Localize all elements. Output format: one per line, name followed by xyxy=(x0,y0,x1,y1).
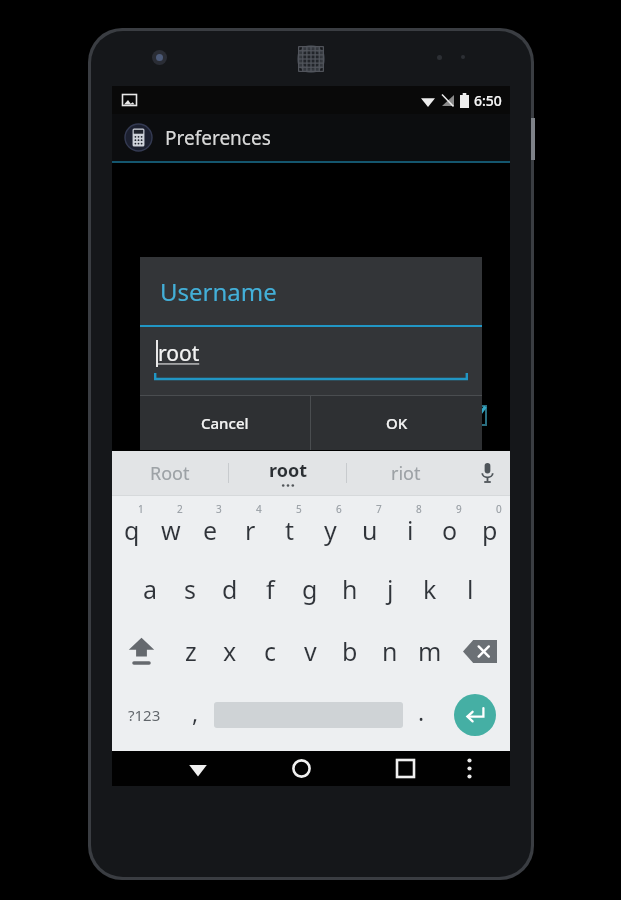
other: Login enabled xyxy=(464,403,488,427)
staticText: t xyxy=(285,513,295,547)
button[interactable]: c xyxy=(250,620,290,682)
button[interactable]: f xyxy=(250,558,290,620)
button[interactable]: . xyxy=(403,682,440,748)
staticText: v xyxy=(304,634,317,668)
staticText: b xyxy=(342,634,358,668)
staticText: 4 xyxy=(256,502,262,516)
staticText: ?123 xyxy=(128,705,161,725)
staticText: y xyxy=(324,513,337,547)
staticText: OK xyxy=(386,413,408,433)
staticText: 6:50 xyxy=(474,91,502,110)
staticText: 8 xyxy=(416,502,422,516)
button[interactable]: 0 xyxy=(470,496,510,558)
button[interactable]: root xyxy=(229,451,346,495)
staticText: q xyxy=(124,513,140,547)
staticText: s xyxy=(184,572,196,606)
button[interactable]: 2 xyxy=(151,496,190,558)
button[interactable]: 3 xyxy=(190,496,230,558)
button[interactable]: Cancel xyxy=(140,396,310,450)
staticText: 6 xyxy=(336,502,342,516)
staticText: 1 xyxy=(138,502,144,516)
staticText: d xyxy=(222,572,238,606)
button[interactable]: ?123 xyxy=(112,682,177,748)
button[interactable]: l xyxy=(450,558,490,620)
staticText: z xyxy=(185,634,197,668)
staticText: g xyxy=(302,572,318,606)
staticText: 0 xyxy=(496,502,502,516)
button[interactable]: Backspace xyxy=(450,620,510,682)
staticText: p xyxy=(482,513,498,547)
staticText: 7 xyxy=(376,502,382,516)
staticText: , xyxy=(192,697,199,728)
button[interactable]: 8 xyxy=(390,496,430,558)
staticText: 5 xyxy=(296,502,302,516)
button[interactable]: 4 xyxy=(230,496,270,558)
button[interactable]: Login xyxy=(112,389,510,441)
staticText: m xyxy=(418,634,442,668)
button[interactable]: Voice input xyxy=(464,451,510,495)
staticText: 9 xyxy=(456,502,462,516)
staticText: riot xyxy=(391,461,421,486)
button[interactable]: a xyxy=(131,558,170,620)
staticText: root xyxy=(269,458,307,483)
staticText: u xyxy=(362,513,378,547)
staticText: Preferences xyxy=(165,125,271,151)
button[interactable]: k xyxy=(410,558,450,620)
button[interactable]: , xyxy=(177,682,214,748)
staticText: 2 xyxy=(177,502,183,516)
staticText: a xyxy=(143,572,158,606)
staticText: h xyxy=(342,572,358,606)
button[interactable]: Back xyxy=(164,751,231,786)
staticText: 3 xyxy=(216,502,222,516)
button[interactable]: n xyxy=(370,620,410,682)
button[interactable]: s xyxy=(170,558,210,620)
button[interactable]: 9 xyxy=(430,496,470,558)
staticText: o xyxy=(442,513,458,547)
button[interactable]: Shift xyxy=(112,620,171,682)
button[interactable]: m xyxy=(410,620,450,682)
staticText: r xyxy=(245,513,256,547)
staticText: k xyxy=(423,572,437,606)
button[interactable]: OK xyxy=(311,396,482,450)
button[interactable]: x xyxy=(210,620,250,682)
button[interactable]: j xyxy=(370,558,410,620)
button[interactable]: v xyxy=(290,620,330,682)
staticText: x xyxy=(223,634,237,668)
staticText: root xyxy=(158,339,200,368)
staticText: j xyxy=(387,572,394,606)
button[interactable]: z xyxy=(171,620,210,682)
staticText: Root xyxy=(150,461,190,486)
staticText: c xyxy=(264,634,277,668)
button[interactable]: 7 xyxy=(350,496,390,558)
button[interactable]: riot xyxy=(347,451,464,495)
staticText: n xyxy=(382,634,398,668)
button[interactable]: b xyxy=(330,620,370,682)
button[interactable]: More options xyxy=(439,751,500,786)
staticText: w xyxy=(161,513,181,547)
staticText: . xyxy=(418,696,425,727)
button[interactable]: g xyxy=(290,558,330,620)
button[interactable]: 5 xyxy=(270,496,310,558)
button[interactable]: d xyxy=(210,558,250,620)
button[interactable]: Root xyxy=(112,451,228,495)
staticText: l xyxy=(467,572,474,606)
staticText: f xyxy=(266,572,275,606)
staticText: e xyxy=(203,513,218,547)
button[interactable]: Space xyxy=(214,682,403,748)
button[interactable]: 6 xyxy=(310,496,350,558)
staticText: Cancel xyxy=(201,413,249,433)
button[interactable]: Enter xyxy=(440,682,510,748)
button[interactable]: 1 xyxy=(112,496,151,558)
staticText: Username xyxy=(160,275,277,308)
staticText: i xyxy=(407,513,414,547)
button[interactable]: Recents xyxy=(372,751,439,786)
button[interactable]: h xyxy=(330,558,370,620)
button[interactable]: Home xyxy=(268,751,335,786)
